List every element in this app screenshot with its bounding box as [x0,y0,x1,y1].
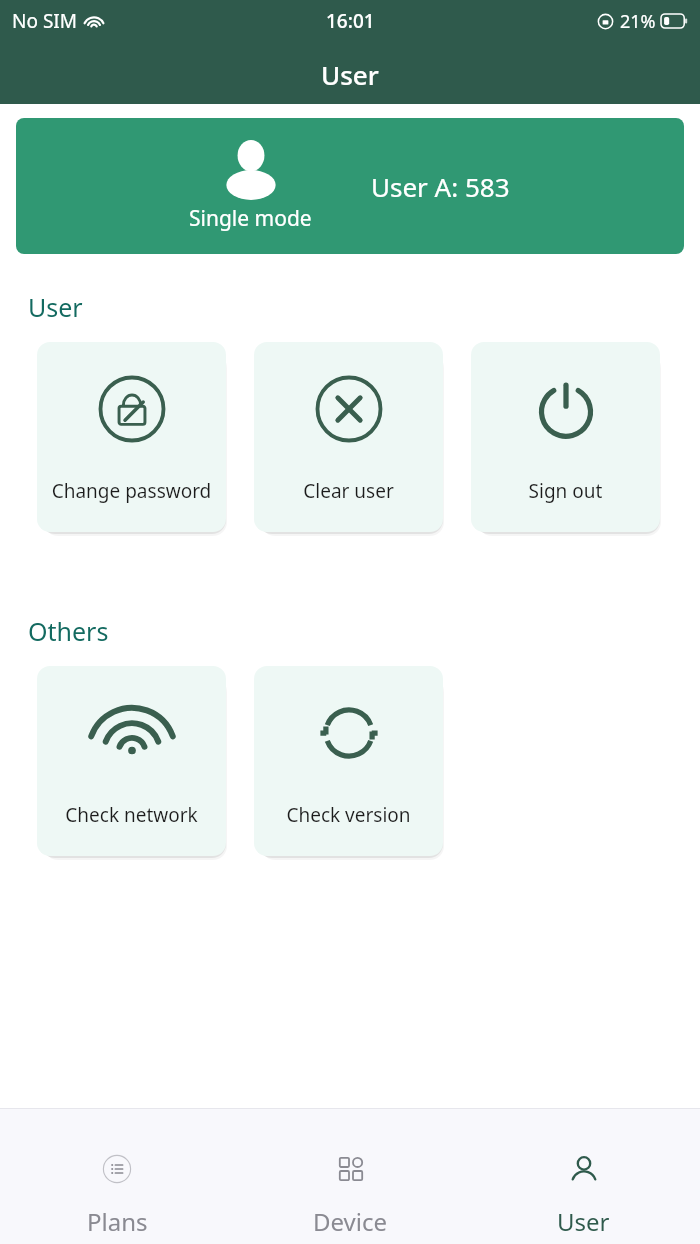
other: Device [331,1149,371,1189]
staticText: Check version [254,802,443,828]
staticText: User [28,290,83,324]
button[interactable]: Check version [254,666,443,856]
staticText: Check network [37,802,226,828]
other: Plans [97,1149,137,1189]
staticText: Change password [37,478,226,504]
button[interactable]: Clear user [254,342,443,532]
button[interactable]: Device [234,1109,467,1244]
staticText: Others [28,614,109,648]
staticText: No SIM [12,8,77,34]
button[interactable]: Plans [0,1109,234,1244]
button[interactable]: Sign out [471,342,660,532]
staticText: 16:01 [326,8,375,34]
button[interactable]: Single mode [16,118,684,254]
button[interactable]: User [467,1109,700,1244]
button[interactable]: Change password [37,342,226,532]
staticText: Device [313,1205,388,1238]
staticText: User [557,1205,610,1238]
staticText: Single mode [189,204,312,233]
staticText: Sign out [471,478,660,504]
staticText: User A: 583 [371,169,510,204]
staticText: User [321,57,379,92]
other: User [564,1149,604,1189]
staticText: Clear user [254,478,443,504]
staticText: Plans [87,1205,148,1238]
staticText: 21% [620,9,656,34]
button[interactable]: Check network [37,666,226,856]
